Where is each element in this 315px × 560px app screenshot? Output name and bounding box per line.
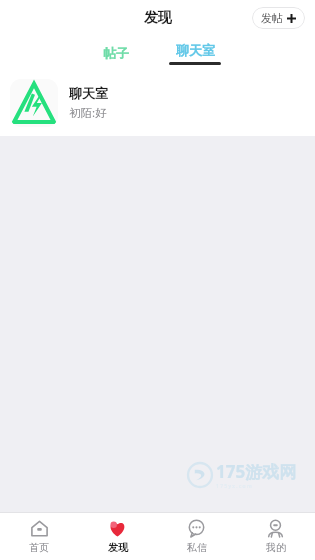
button[interactable]: 帖子 xyxy=(87,41,145,65)
staticText: 私信 xyxy=(187,541,207,554)
staticText: 首页 xyxy=(29,541,49,554)
button[interactable]: Messages xyxy=(157,513,236,560)
button[interactable]: Home xyxy=(0,513,78,560)
staticText: 初陌:好 xyxy=(69,105,107,121)
staticText: 发现 xyxy=(108,541,128,554)
staticText: 发帖 xyxy=(261,11,283,25)
staticText: 聊天室 xyxy=(69,85,108,101)
button[interactable]: 发帖 xyxy=(252,7,305,29)
staticText: 175游戏网 xyxy=(216,460,297,483)
button[interactable]: Discover xyxy=(78,513,157,560)
button[interactable]: Profile xyxy=(236,513,315,560)
staticText: 发现 xyxy=(144,9,172,27)
button[interactable]: 聊天室 xyxy=(0,70,315,136)
staticText: 帖子 xyxy=(103,45,129,61)
button[interactable]: 聊天室 xyxy=(161,42,229,65)
staticText: 聊天室 xyxy=(176,42,215,58)
staticText: 1 7 5 y x . c o m xyxy=(216,483,252,490)
staticText: 我的 xyxy=(266,541,286,554)
